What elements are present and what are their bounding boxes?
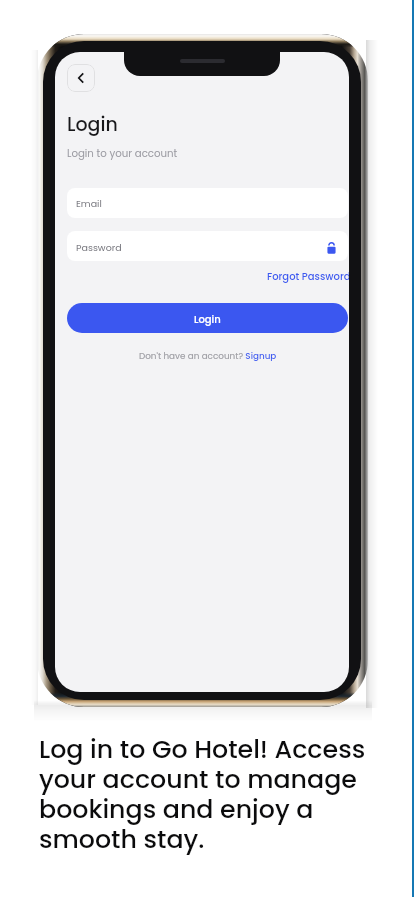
button[interactable]: Email — [67, 188, 348, 218]
staticText: Log in to Go Hotel! Access your account … — [39, 731, 366, 857]
button[interactable]: Password — [67, 231, 348, 261]
staticText: Forgot Password? — [267, 269, 349, 283]
button[interactable]: Don't have an account? Signup — [137, 348, 279, 364]
staticText: Password — [76, 241, 122, 254]
staticText: Login to your account — [67, 146, 178, 160]
staticText: Login — [194, 312, 221, 326]
button[interactable]: Forgot Password? — [265, 268, 349, 284]
staticText: Login — [67, 111, 118, 138]
button[interactable]: Back — [67, 64, 95, 92]
staticText: Email — [76, 197, 102, 210]
staticText: Don't have an account? Signup — [139, 350, 277, 362]
button[interactable]: Login — [67, 303, 348, 333]
